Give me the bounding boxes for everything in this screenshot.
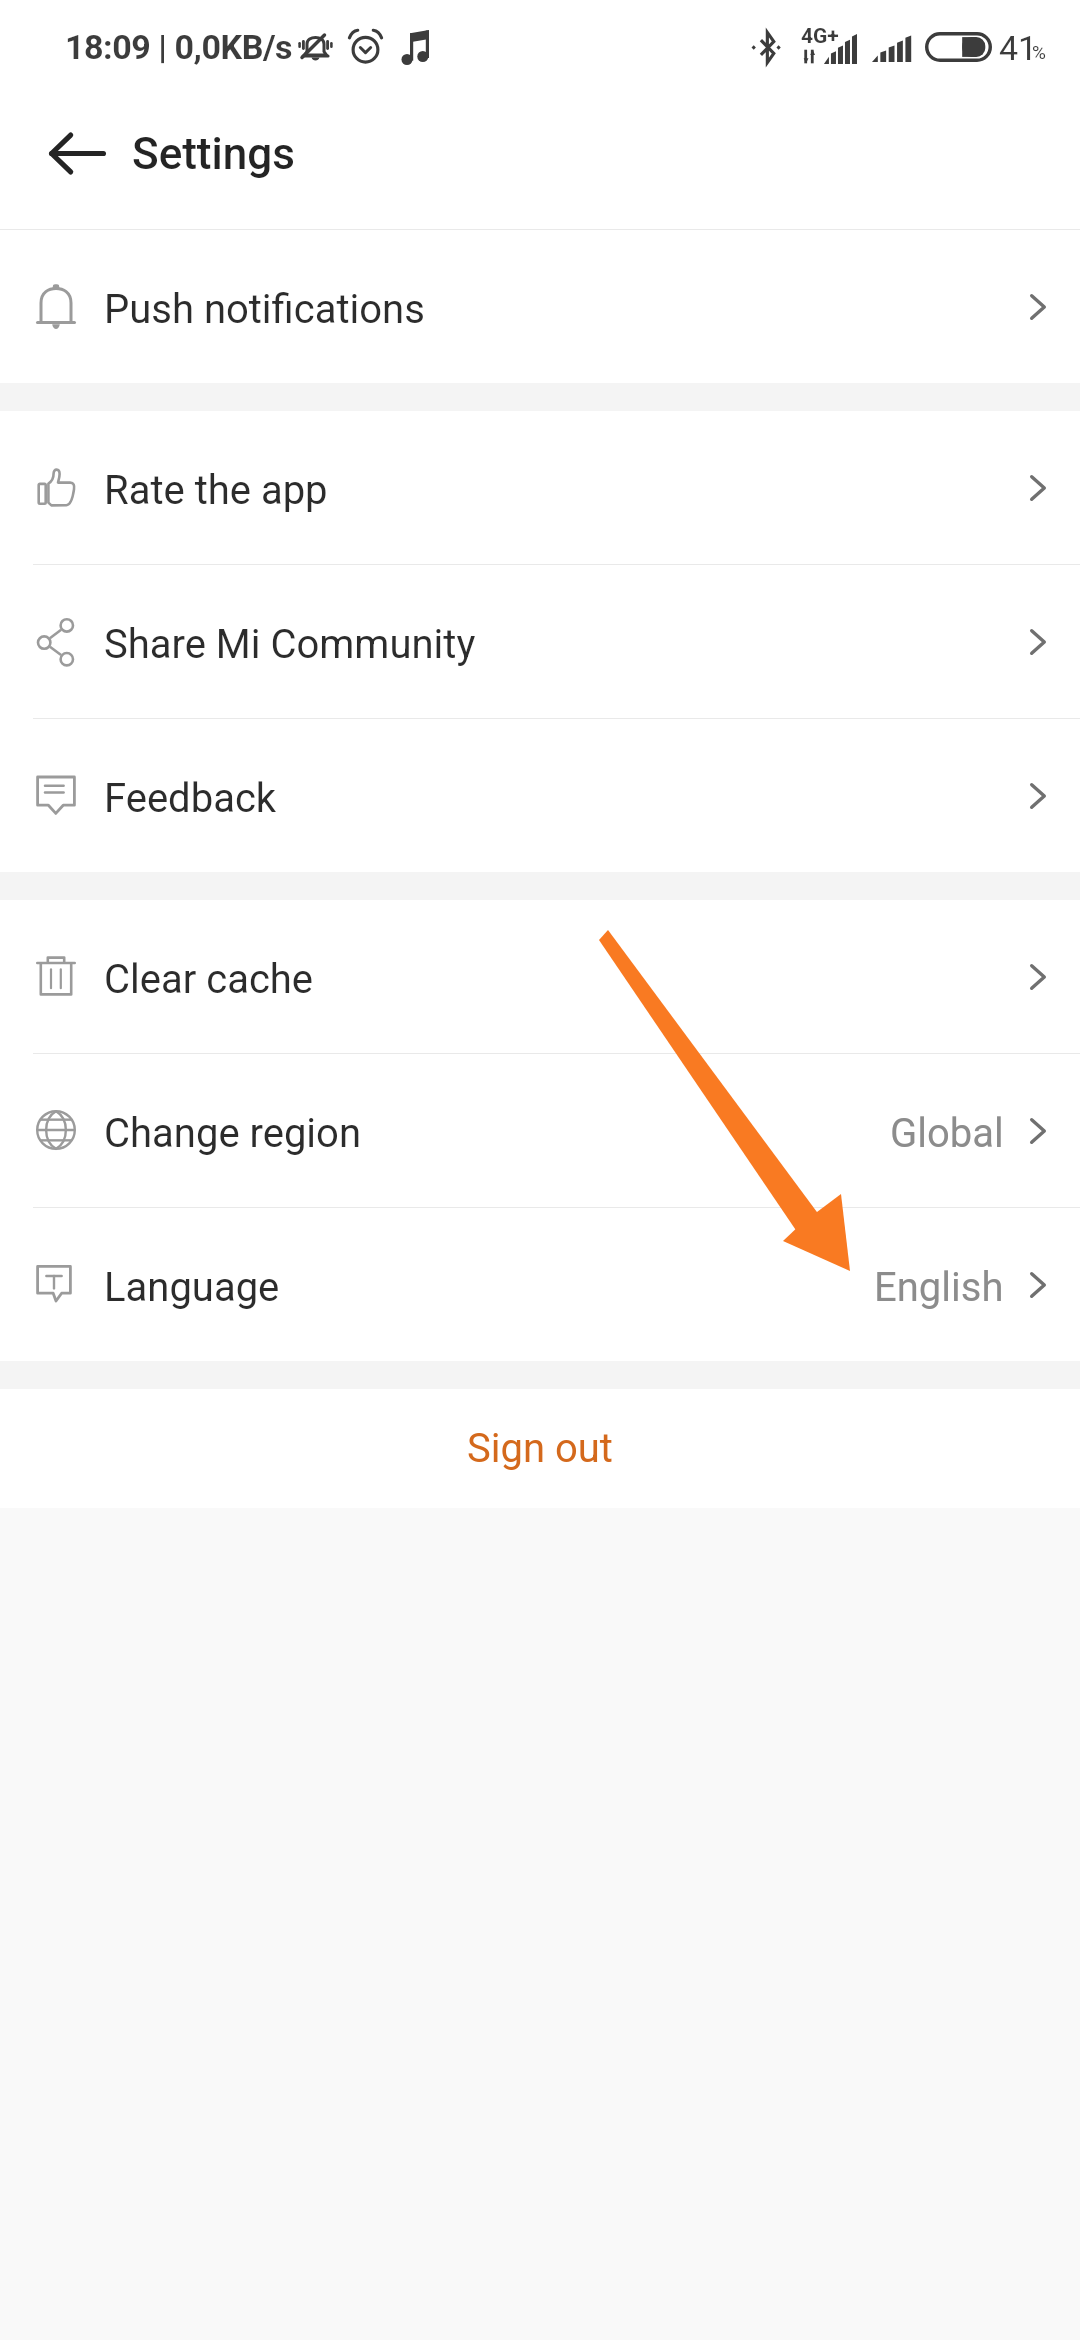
staticText: Settings [132, 128, 295, 180]
staticText: 41 [999, 28, 1038, 68]
button[interactable]: Share Mi Community [0, 565, 1080, 718]
staticText: Feedback [104, 775, 277, 822]
button[interactable]: Push notifications [0, 230, 1080, 383]
staticText: Global [890, 1110, 1004, 1157]
staticText: Rate the app [104, 467, 328, 514]
staticText: Change region [104, 1110, 361, 1157]
staticText: 4G+ [801, 24, 839, 49]
staticText: English [874, 1264, 1004, 1311]
staticText: Share Mi Community [104, 621, 476, 668]
button[interactable]: Language [0, 1208, 1080, 1361]
button[interactable]: Feedback [0, 719, 1080, 872]
button[interactable]: Back [21, 97, 133, 209]
staticText: Language [104, 1264, 280, 1311]
button[interactable]: Change region [0, 1054, 1080, 1207]
button[interactable]: Rate the app [0, 411, 1080, 564]
staticText: 18:09 | 0,0KB/s [65, 27, 293, 67]
staticText: Clear cache [104, 956, 314, 1003]
staticText: Sign out [467, 1425, 613, 1472]
button[interactable]: Clear cache [0, 900, 1080, 1053]
staticText: Push notifications [104, 286, 425, 333]
button[interactable]: Sign out [0, 1389, 1080, 1508]
staticText: % [1032, 41, 1046, 63]
